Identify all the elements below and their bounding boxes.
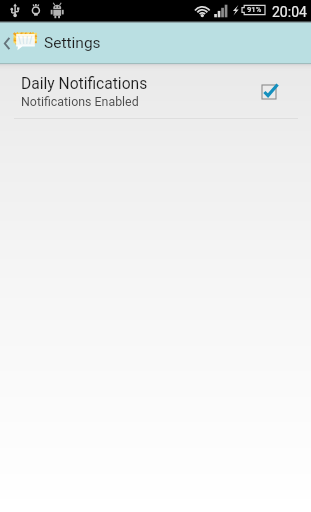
staticText: Notifications Enabled <box>21 94 139 109</box>
staticText: 20:04 <box>272 4 307 20</box>
staticText: Daily Notifications <box>21 75 148 93</box>
staticText: 91% <box>247 5 262 14</box>
button[interactable]: Navigate up <box>0 23 311 63</box>
button[interactable]: Daily Notifications enabled <box>243 66 295 117</box>
staticText: Settings <box>44 34 101 52</box>
button[interactable]: Daily Notifications <box>0 67 311 118</box>
